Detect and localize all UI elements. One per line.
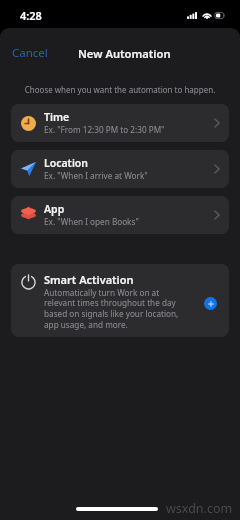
staticText: Ex. "From 12:30 PM to 2:30 PM" (44, 124, 165, 135)
staticText: Time (44, 110, 70, 124)
button[interactable]: Location (11, 150, 229, 188)
staticText: Choose when you want the automation to h… (12, 84, 228, 95)
button[interactable]: App (11, 196, 229, 234)
staticText: App (44, 202, 65, 216)
staticText: 4:28 (20, 8, 42, 23)
button[interactable]: Time (11, 104, 229, 142)
staticText: Cancel (12, 45, 48, 61)
button[interactable]: Add (204, 297, 217, 310)
staticText: Smart Activation (44, 272, 134, 287)
staticText: New Automation (78, 46, 171, 61)
staticText: Location (44, 156, 89, 170)
staticText: wsxdn.com (166, 500, 233, 517)
button[interactable]: Smart Activation (11, 264, 229, 337)
button[interactable]: Cancel (0, 40, 60, 66)
staticText: Ex. "When I arrive at Work" (44, 170, 148, 181)
staticText: Ex. "When I open Books" (44, 216, 139, 227)
staticText: Automatically turn Work on at relevant t… (44, 287, 186, 331)
